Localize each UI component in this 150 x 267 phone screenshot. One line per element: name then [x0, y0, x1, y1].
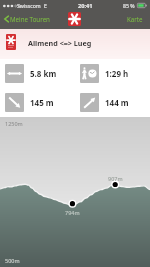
- other: App logo: [68, 12, 81, 26]
- button[interactable]: Meine Touren: [3, 15, 51, 23]
- staticText: Swisscom: [17, 2, 41, 9]
- button[interactable]: 144 m: [75, 88, 150, 117]
- staticText: 500m: [5, 257, 20, 264]
- button[interactable]: 5.8 km: [0, 59, 75, 88]
- button[interactable]: Karte: [126, 15, 144, 23]
- staticText: Allmend <=> Lueg: [28, 38, 92, 48]
- button[interactable]: 145 m: [0, 88, 75, 117]
- staticText: 144 m: [105, 97, 129, 108]
- staticText: 20:41: [78, 2, 93, 10]
- button[interactable]: 1:29 h: [75, 59, 150, 88]
- staticText: 145 m: [30, 97, 54, 108]
- staticText: 794m: [65, 209, 80, 216]
- staticText: 85 %: [123, 2, 135, 9]
- staticText: 1:29 h: [105, 68, 129, 79]
- staticText: 1250m: [5, 120, 23, 127]
- other: Tour image: [6, 34, 16, 50]
- staticText: 907m: [108, 175, 123, 182]
- staticText: 5.8 km: [30, 68, 57, 79]
- staticText: Meine Touren: [10, 15, 50, 23]
- staticText: Karte: [127, 15, 143, 23]
- staticText: E: [44, 2, 47, 9]
